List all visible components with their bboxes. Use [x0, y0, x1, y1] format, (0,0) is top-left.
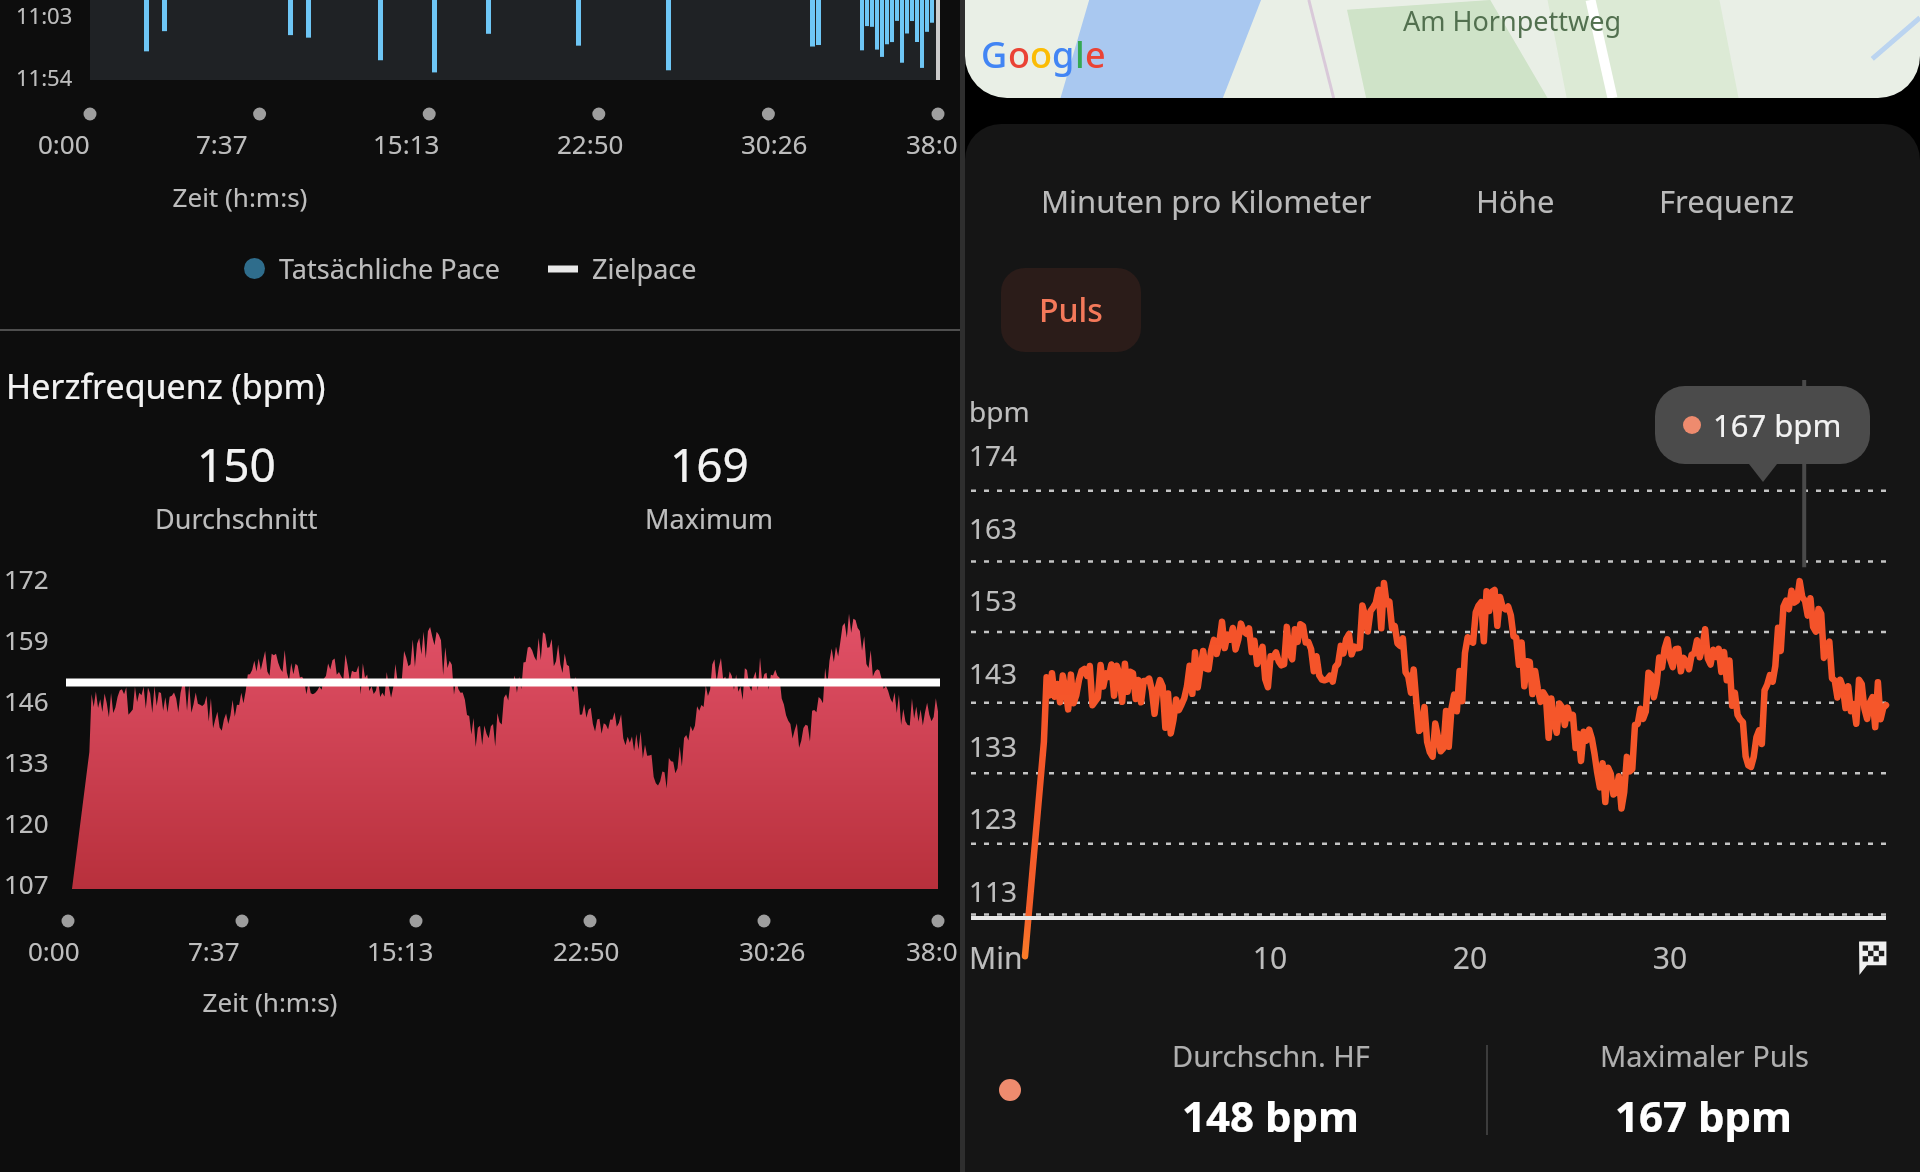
staticText: 159: [4, 622, 49, 657]
staticText: 167 bpm: [1713, 404, 1842, 446]
staticText: Minuten pro Kilometer: [1041, 180, 1372, 222]
staticText: Zielpace: [592, 250, 697, 287]
staticText: G: [981, 30, 1008, 79]
staticText: 133: [969, 727, 1018, 765]
staticText: bpm: [969, 392, 1030, 430]
staticText: Tatsächliche Pace: [279, 250, 500, 287]
staticText: 146: [4, 683, 49, 718]
button[interactable]: Minuten pro Kilometer: [1041, 172, 1372, 230]
staticText: Puls: [1039, 288, 1103, 332]
staticText: Durchschn. HF: [1172, 1036, 1370, 1075]
staticText: 133: [4, 744, 49, 779]
staticText: 22:50: [553, 933, 620, 968]
staticText: Zeit (h:m:s): [0, 984, 540, 1019]
staticText: Zeit (h:m:s): [0, 179, 480, 214]
staticText: 0:00: [38, 126, 90, 161]
staticText: Maximum: [645, 500, 774, 537]
button[interactable]: Puls: [1001, 268, 1141, 352]
staticText: 148 bpm: [1182, 1087, 1360, 1144]
staticText: 143: [969, 654, 1018, 692]
staticText: e: [1085, 30, 1106, 79]
staticText: 10: [1170, 937, 1370, 978]
staticText: Höhe: [1476, 180, 1555, 222]
staticText: 22:50: [557, 126, 624, 161]
staticText: 163: [969, 509, 1018, 547]
staticText: 20: [1370, 937, 1570, 978]
staticText: Durchschnitt: [155, 500, 318, 537]
staticText: Herzfrequenz (bpm): [6, 363, 326, 409]
staticText: 0:00: [28, 933, 80, 968]
staticText: g: [1052, 30, 1075, 79]
staticText: Frequenz: [1659, 180, 1795, 222]
staticText: 30:26: [741, 126, 808, 161]
staticText: l: [1075, 30, 1085, 79]
staticText: Maximaler Puls: [1600, 1036, 1809, 1075]
staticText: 38:0: [906, 126, 958, 161]
button[interactable]: 167 bpm: [1655, 386, 1870, 464]
staticText: 11:54: [16, 62, 73, 92]
staticText: 167 bpm: [1615, 1087, 1793, 1144]
staticText: 30: [1570, 937, 1770, 978]
staticText: 113: [969, 872, 1018, 910]
button[interactable]: Höhe: [1476, 172, 1555, 230]
staticText: 153: [969, 581, 1018, 619]
staticText: o: [1008, 30, 1030, 79]
staticText: 123: [969, 799, 1018, 837]
staticText: 7:37: [188, 933, 240, 968]
staticText: 150: [197, 433, 276, 496]
staticText: 174: [969, 436, 1018, 474]
staticText: 107: [4, 866, 49, 901]
staticText: 38:0: [906, 933, 958, 968]
staticText: 120: [4, 805, 49, 840]
staticText: 11:03: [16, 0, 73, 30]
button[interactable]: Frequenz: [1659, 172, 1795, 230]
staticText: o: [1030, 30, 1052, 79]
staticText: 7:37: [196, 126, 248, 161]
button[interactable]: Ziel: [1854, 940, 1890, 976]
staticText: 172: [4, 561, 49, 596]
staticText: 15:13: [367, 933, 434, 968]
staticText: Min: [969, 937, 1170, 978]
staticText: 30:26: [739, 933, 806, 968]
staticText: Am Hornpettweg: [1403, 2, 1622, 39]
staticText: 169: [670, 433, 749, 496]
staticText: 15:13: [373, 126, 440, 161]
